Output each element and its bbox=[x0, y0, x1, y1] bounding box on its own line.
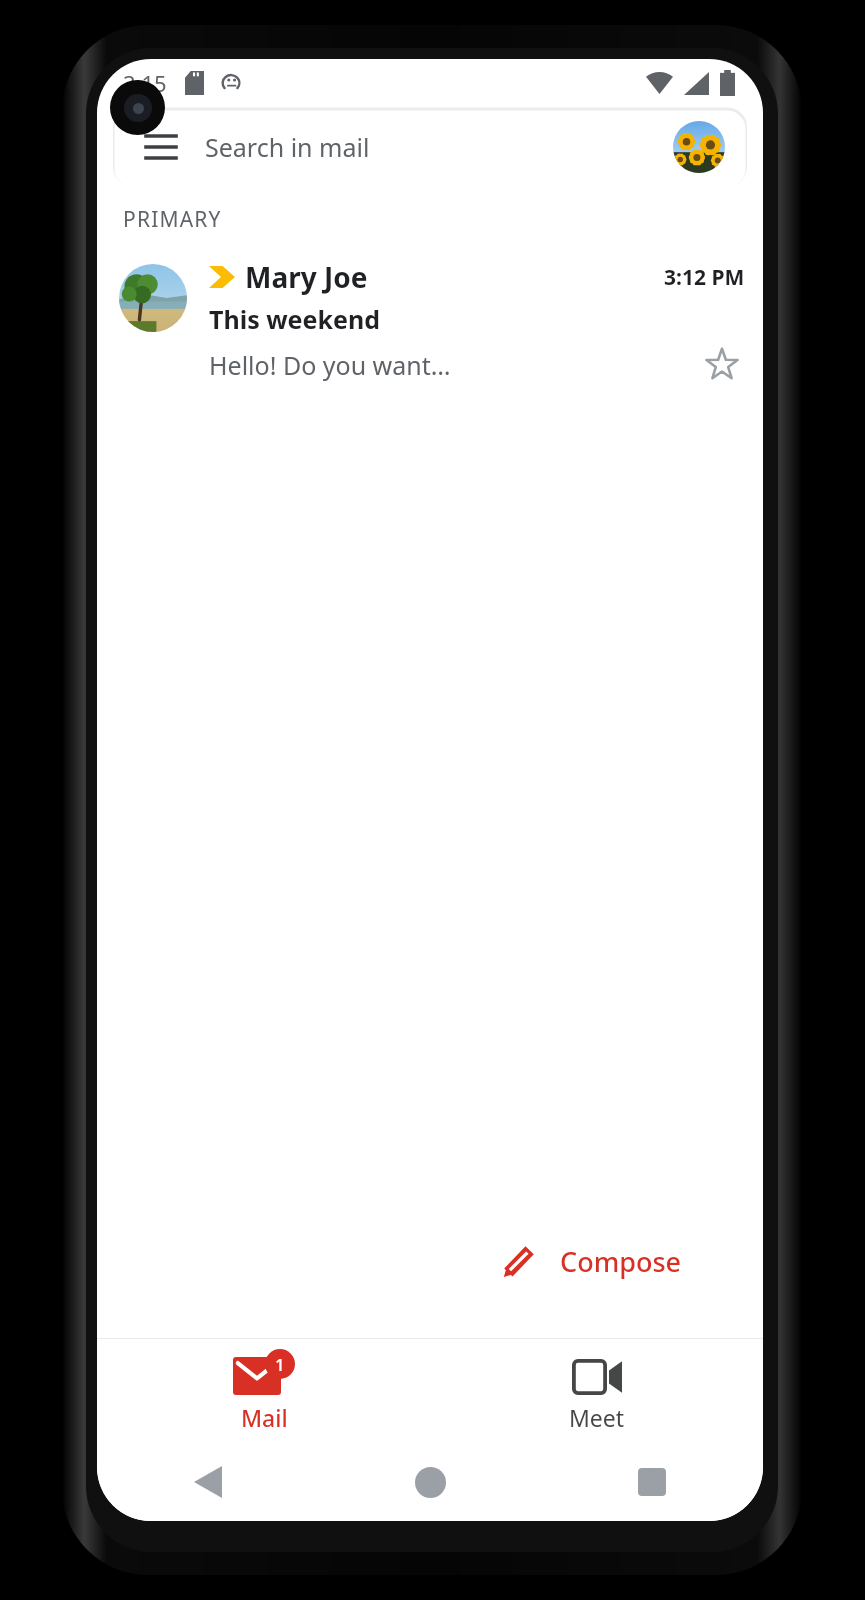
button[interactable]: Compose bbox=[468, 1207, 713, 1315]
button[interactable]: Home bbox=[319, 1443, 541, 1521]
button[interactable]: Meet bbox=[430, 1339, 763, 1443]
button[interactable]: Account bbox=[673, 121, 725, 173]
staticText: 3:12 PM bbox=[664, 263, 745, 292]
button[interactable]: 1 bbox=[97, 1339, 430, 1443]
staticText: 1 bbox=[275, 1353, 285, 1376]
staticText: 3:15 bbox=[123, 68, 167, 98]
staticText: Meet bbox=[569, 1402, 625, 1433]
button[interactable]: Open navigation drawer bbox=[139, 125, 183, 169]
staticText: PRIMARY bbox=[123, 205, 222, 234]
button[interactable]: Back bbox=[97, 1443, 319, 1521]
button[interactable]: Mary Joe bbox=[97, 252, 763, 398]
staticText: Compose bbox=[560, 1243, 682, 1280]
staticText: This weekend bbox=[209, 302, 380, 336]
staticText: Hello! Do you want to meet for coffee th… bbox=[209, 348, 454, 382]
staticText: Mail bbox=[241, 1402, 288, 1433]
button[interactable]: Open navigation drawer bbox=[113, 107, 747, 187]
button[interactable]: Recent apps bbox=[541, 1443, 763, 1521]
staticText: Mary Joe bbox=[245, 258, 368, 296]
staticText: Search in mail bbox=[205, 130, 370, 164]
button[interactable]: Star conversation bbox=[699, 342, 745, 388]
